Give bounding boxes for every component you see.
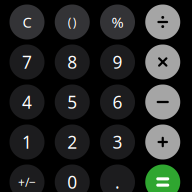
staticText: 5 <box>67 90 77 113</box>
button[interactable]: 7 <box>9 44 44 79</box>
staticText: 7 <box>22 50 32 73</box>
staticText: 2 <box>67 130 77 153</box>
button[interactable]: 4 <box>9 84 44 119</box>
button[interactable]: Equals <box>145 164 180 192</box>
staticText: +/− <box>18 174 36 190</box>
button[interactable]: Add <box>145 124 180 159</box>
button[interactable]: 1 <box>9 124 44 159</box>
staticText: 8 <box>67 50 77 73</box>
button[interactable]: % <box>100 4 135 39</box>
staticText: . <box>115 170 120 192</box>
button[interactable]: 5 <box>55 84 90 119</box>
staticText: 0 <box>67 170 77 192</box>
button[interactable]: Divide <box>145 4 180 39</box>
button[interactable]: +/− <box>9 164 44 192</box>
button[interactable]: 8 <box>55 44 90 79</box>
button[interactable]: 6 <box>100 84 135 119</box>
button[interactable]: 9 <box>100 44 135 79</box>
button[interactable]: Multiply <box>145 44 180 79</box>
staticText: 1 <box>22 130 32 153</box>
staticText: % <box>111 12 123 32</box>
staticText: 3 <box>112 130 122 153</box>
button[interactable]: ( ) <box>55 4 90 39</box>
button[interactable]: 2 <box>55 124 90 159</box>
button[interactable]: . <box>100 164 135 192</box>
staticText: 9 <box>112 50 122 73</box>
staticText: 6 <box>112 90 122 113</box>
button[interactable]: 0 <box>55 164 90 192</box>
button[interactable]: C <box>9 4 44 39</box>
staticText: 4 <box>22 90 32 113</box>
button[interactable]: 3 <box>100 124 135 159</box>
staticText: C <box>22 12 31 32</box>
button[interactable]: Subtract <box>145 84 180 119</box>
staticText: ( ) <box>68 14 77 30</box>
